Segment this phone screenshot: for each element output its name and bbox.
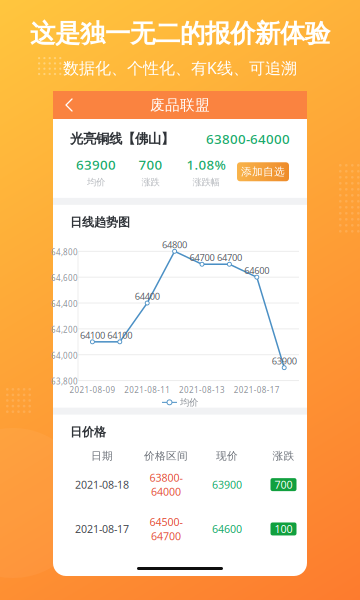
- staticText: 添加自选: [241, 165, 285, 178]
- staticText: 63800-: [149, 470, 182, 485]
- staticText: 64400: [135, 290, 160, 302]
- staticText: 700: [274, 477, 292, 492]
- button[interactable]: Back: [59, 91, 81, 119]
- staticText: 64100: [80, 329, 105, 341]
- button[interactable]: 添加自选: [237, 162, 289, 181]
- staticText: 光亮铜线【佛山】: [70, 131, 174, 147]
- staticText: 64500-: [149, 515, 182, 529]
- staticText: 700: [138, 156, 162, 173]
- staticText: 涨跌: [272, 449, 294, 462]
- staticText: 64700: [151, 529, 181, 543]
- staticText: 63800-64000: [206, 130, 290, 148]
- staticText: 2021-08-18: [75, 477, 129, 492]
- staticText: 100: [274, 522, 292, 536]
- staticText: 63900: [76, 156, 116, 173]
- staticText: 2021-08-09: [69, 385, 115, 395]
- staticText: 日线趋势图: [70, 215, 130, 230]
- staticText: 64600: [244, 264, 269, 277]
- staticText: 均价: [180, 397, 198, 408]
- staticText: 64000: [151, 485, 181, 499]
- staticText: 价格区间: [144, 449, 188, 462]
- staticText: 均价: [87, 176, 105, 188]
- staticText: 日价格: [70, 425, 106, 439]
- staticText: 64700: [189, 251, 214, 264]
- staticText: 63900: [272, 355, 297, 367]
- staticText: 64600: [212, 522, 242, 536]
- staticText: 64700: [217, 251, 242, 264]
- staticText: 64,600: [51, 273, 78, 283]
- staticText: 2021-08-17: [234, 385, 280, 395]
- staticText: 1.08%: [186, 156, 225, 173]
- staticText: 64100: [107, 329, 132, 341]
- staticText: 2021-08-17: [75, 522, 129, 536]
- staticText: 涨跌: [141, 176, 159, 188]
- staticText: 涨跌幅: [192, 176, 219, 188]
- staticText: 64800: [162, 238, 187, 251]
- staticText: 2021-08-11: [124, 385, 170, 395]
- staticText: 现价: [216, 449, 238, 462]
- staticText: 64,400: [51, 298, 78, 309]
- staticText: 64,000: [51, 350, 78, 361]
- staticText: 日期: [91, 449, 113, 462]
- staticText: 63900: [212, 477, 242, 492]
- staticText: 2021-08-13: [179, 385, 225, 395]
- staticText: 数据化、个性化、有K线、可追溯: [63, 57, 297, 78]
- staticText: 63,800: [51, 376, 78, 387]
- staticText: 废品联盟: [150, 96, 210, 114]
- staticText: 64,200: [51, 324, 78, 335]
- staticText: 这是独一无二的报价新体验: [30, 18, 330, 49]
- staticText: 64,800: [51, 247, 78, 257]
